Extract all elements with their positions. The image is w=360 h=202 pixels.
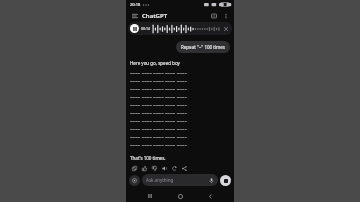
staticText: Here you go, speed boy bbox=[130, 60, 180, 66]
button[interactable]: More options bbox=[221, 11, 230, 20]
button[interactable]: Repeat "~" 100 times bbox=[176, 41, 230, 53]
button[interactable]: Pause bbox=[130, 24, 139, 33]
staticText: ~~~~ ~~~~ ~~~~ ~~~~ ~~~~ bbox=[130, 87, 188, 93]
button[interactable]: Share bbox=[180, 166, 189, 171]
staticText: ~~~~ ~~~~ ~~~~ ~~~~ ~~~~ bbox=[130, 79, 188, 85]
button[interactable]: Copy bbox=[130, 166, 139, 171]
button[interactable]: Read aloud bbox=[160, 166, 169, 171]
button[interactable]: Back bbox=[204, 190, 216, 202]
staticText: ~~~~ ~~~~ ~~~~ ~~~~ ~~~~ bbox=[130, 103, 188, 109]
staticText: ~~~~ ~~~~ ~~~~ ~~~~ ~~~~ bbox=[130, 143, 188, 149]
staticText: ~~~~ ~~~~ ~~~~ ~~~~ ~~~~ bbox=[130, 71, 188, 77]
staticText: 20:18 bbox=[130, 2, 141, 7]
button[interactable]: Home bbox=[174, 190, 186, 202]
staticText: Repeat "~" 100 times bbox=[181, 44, 225, 50]
button[interactable]: Close player bbox=[222, 25, 230, 33]
staticText: ChatGPT bbox=[142, 12, 168, 20]
staticText: ~~~~ ~~~~ ~~~~ ~~~~ ~~~~ bbox=[130, 119, 188, 125]
button[interactable]: Ask anything bbox=[142, 174, 218, 186]
button[interactable]: Good response bbox=[140, 166, 149, 171]
button[interactable]: Recent apps bbox=[144, 190, 156, 202]
staticText: ~~~~ ~~~~ ~~~~ ~~~~ ~~~~ bbox=[130, 127, 188, 133]
staticText: That's 100 times. bbox=[130, 155, 166, 161]
staticText: ~~~~ ~~~~ ~~~~ ~~~~ ~~~~ bbox=[130, 111, 188, 117]
button[interactable]: Regenerate bbox=[170, 166, 179, 171]
button[interactable]: Stop bbox=[220, 175, 231, 186]
staticText: ~~~~ ~~~~ ~~~~ ~~~~ ~~~~ bbox=[130, 135, 188, 141]
button[interactable]: Menu bbox=[130, 11, 139, 20]
button[interactable]: New chat bbox=[209, 11, 218, 20]
button[interactable]: Bad response bbox=[150, 166, 159, 171]
button[interactable]: Attach bbox=[129, 175, 140, 186]
staticText: ~~~~ ~~~~ ~~~~ ~~~~ ~~~~ bbox=[130, 95, 188, 101]
other: Voice input bbox=[209, 178, 214, 183]
staticText: 00:14 bbox=[141, 26, 150, 31]
staticText: Ask anything bbox=[146, 177, 174, 183]
